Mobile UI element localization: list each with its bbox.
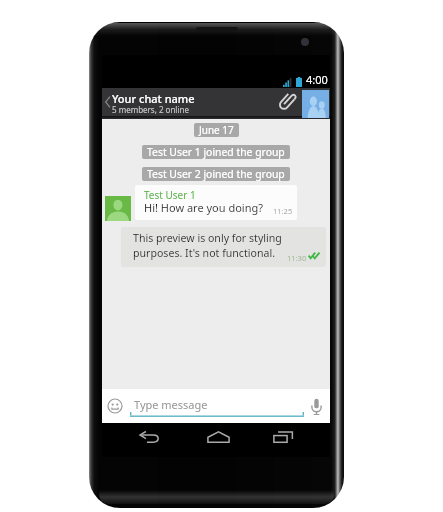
staticText: 5 members, 2 online [112,104,189,115]
button[interactable]: Emoji [104,395,126,417]
staticText: 11:30 [287,253,307,263]
button[interactable]: Type message [128,393,306,421]
button[interactable]: Home [200,423,236,451]
staticText: Test User 1 [144,188,196,202]
staticText: Type message [134,397,208,412]
staticText: Your chat name [112,91,195,106]
button[interactable]: This preview is only for styling [121,227,326,267]
button[interactable]: Your chat name [112,88,277,116]
button[interactable]: Back [102,88,112,116]
button[interactable]: Test User 1 joined the group [142,145,290,159]
button[interactable]: Recent apps [266,423,302,451]
staticText: Test User 1 joined the group [147,145,285,159]
staticText: 11:25 [273,206,293,216]
staticText: Test User 2 joined the group [147,167,285,181]
button[interactable]: Test User 1 avatar [105,196,131,221]
button[interactable]: Test User 2 joined the group [142,167,290,181]
staticText: This preview is only for styling [133,231,282,245]
button[interactable]: Test User 1 [135,185,297,220]
button[interactable]: June 17 [194,123,239,137]
button[interactable]: Back [131,423,167,451]
staticText: purposes. It's not functional. [133,246,275,260]
staticText: June 17 [199,123,234,137]
staticText: Hi! How are you doing? [144,200,263,215]
button[interactable]: Group members [302,90,329,118]
staticText: 4:00 [306,72,328,87]
button[interactable]: Voice message [306,395,326,417]
button[interactable]: Attach file [272,88,300,116]
